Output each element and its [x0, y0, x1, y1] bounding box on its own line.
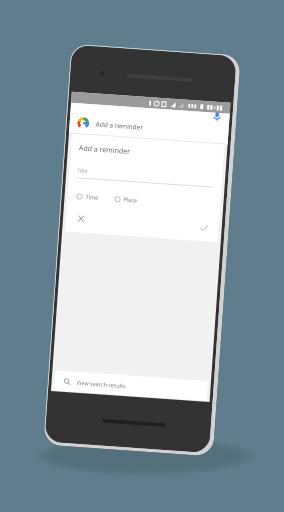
button[interactable]: Add a reminder	[69, 103, 230, 145]
staticText: Place	[123, 196, 138, 204]
button[interactable]: Cancel	[75, 212, 87, 225]
staticText: View search results	[76, 379, 127, 389]
button[interactable]: Title	[77, 167, 214, 188]
button[interactable]: View search results	[54, 370, 208, 401]
staticText: Time	[85, 193, 99, 201]
button[interactable]: Place	[112, 193, 140, 206]
button[interactable]: Confirm	[197, 221, 210, 234]
staticText: Title	[77, 167, 88, 175]
button[interactable]: Voice search	[210, 109, 224, 123]
staticText: Add a reminder	[79, 143, 131, 157]
button[interactable]: Time	[74, 190, 101, 203]
staticText: Add a reminder	[95, 119, 144, 132]
